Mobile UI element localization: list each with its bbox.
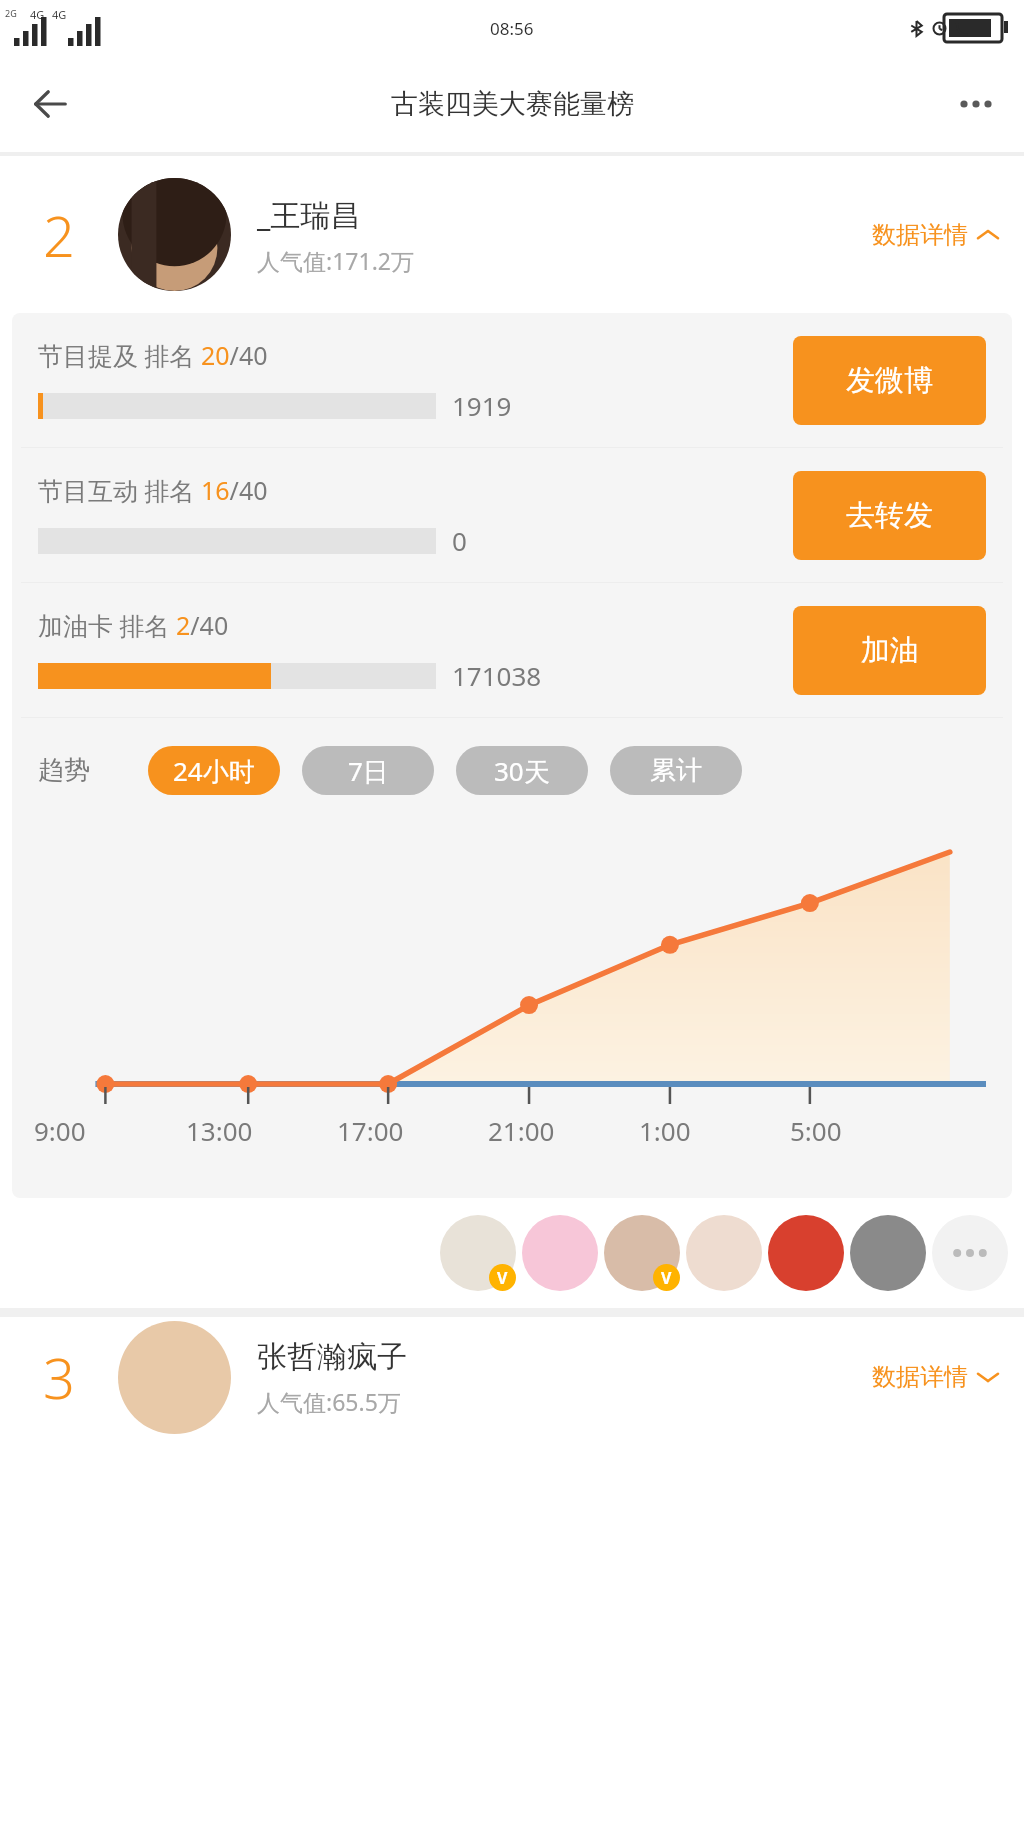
- button[interactable]: 去转发: [793, 471, 986, 560]
- staticText: 5:00: [790, 1113, 842, 1148]
- staticText: 9:00: [34, 1113, 86, 1148]
- staticText: 3: [43, 1339, 75, 1415]
- button[interactable]: 7日: [302, 746, 434, 795]
- button[interactable]: 3: [0, 1317, 1024, 1437]
- staticText: 人气值:65.5万: [257, 1386, 401, 1417]
- staticText: 1919: [452, 388, 512, 423]
- staticText: 21:00: [488, 1113, 555, 1148]
- button[interactable]: 2: [0, 156, 1024, 313]
- staticText: 4G: [30, 7, 45, 22]
- staticText: 人气值:171.2万: [257, 245, 414, 276]
- staticText: _王瑞昌: [257, 194, 361, 235]
- staticText: 趋势: [38, 754, 90, 787]
- button[interactable]: 发微博: [793, 336, 986, 425]
- button[interactable]: [850, 1215, 926, 1291]
- staticText: 7日: [348, 753, 389, 789]
- button[interactable]: 累计: [610, 746, 742, 795]
- button[interactable]: [768, 1215, 844, 1291]
- button[interactable]: 24小时: [148, 746, 280, 795]
- button[interactable]: [522, 1215, 598, 1291]
- button[interactable]: Back: [22, 76, 78, 132]
- button[interactable]: [440, 1215, 516, 1291]
- staticText: 去转发: [846, 497, 933, 534]
- staticText: 2: [43, 197, 75, 273]
- staticText: 0: [452, 523, 467, 558]
- staticText: 发微博: [846, 362, 933, 399]
- staticText: 30天: [494, 753, 550, 789]
- button[interactable]: [604, 1215, 680, 1291]
- staticText: 累计: [650, 754, 702, 787]
- staticText: 加油: [861, 632, 919, 669]
- button[interactable]: 数据详情: [872, 220, 998, 250]
- button[interactable]: 加油: [793, 606, 986, 695]
- button[interactable]: [686, 1215, 762, 1291]
- staticText: 17:00: [337, 1113, 404, 1148]
- staticText: 171038: [452, 658, 542, 693]
- staticText: 4G: [52, 7, 67, 22]
- staticText: 13:00: [186, 1113, 253, 1148]
- staticText: 古装四美大赛能量榜: [391, 87, 634, 121]
- staticText: V: [661, 1267, 672, 1289]
- staticText: V: [497, 1267, 508, 1289]
- staticText: 张哲瀚疯子: [257, 1338, 407, 1376]
- staticText: 08:56: [490, 17, 534, 40]
- staticText: 节目互动 排名 16/40: [38, 473, 268, 507]
- staticText: 1:00: [639, 1113, 691, 1148]
- staticText: 数据详情: [872, 220, 968, 250]
- button[interactable]: More options: [948, 76, 1004, 132]
- button[interactable]: 数据详情: [872, 1362, 998, 1392]
- staticText: 节目提及 排名 20/40: [38, 338, 268, 372]
- button[interactable]: 30天: [456, 746, 588, 795]
- staticText: 数据详情: [872, 1362, 968, 1392]
- staticText: 2G: [5, 7, 17, 19]
- staticText: 加油卡 排名 2/40: [38, 608, 229, 642]
- staticText: 24小时: [173, 753, 255, 789]
- button[interactable]: More fans: [932, 1215, 1008, 1291]
